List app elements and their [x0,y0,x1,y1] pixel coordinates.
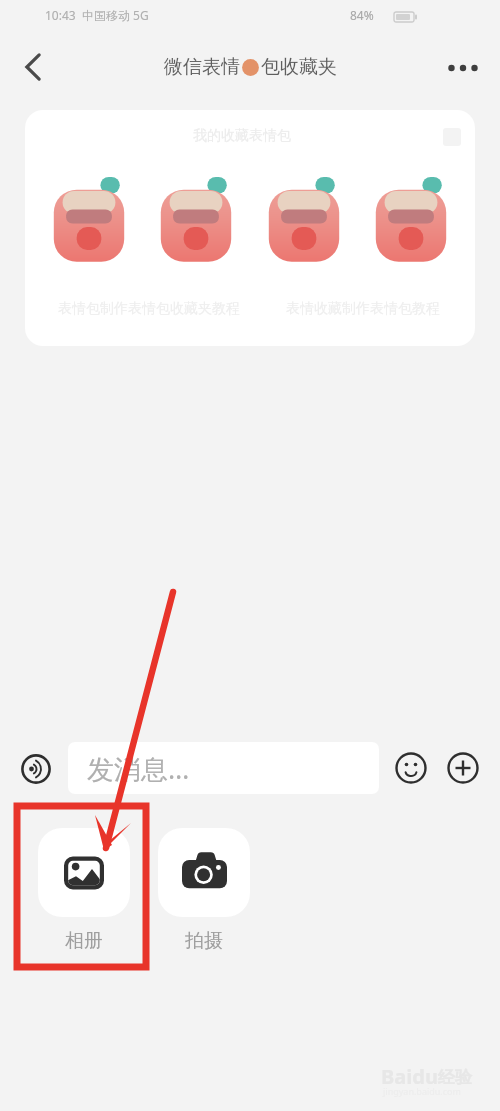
button[interactable]: 拍摄 [158,828,250,953]
staticText: 84% [350,7,374,23]
button[interactable]: More options [440,44,486,90]
button[interactable]: 相册 [38,828,130,953]
staticText: 表情包制作表情包收藏夹教程 [58,300,240,318]
button[interactable]: Back [10,44,56,90]
staticText: 发消息… [87,750,190,787]
staticText: 微信表情 [164,55,240,79]
staticText: Baidu [381,1063,438,1090]
button[interactable]: 发消息… [68,742,379,794]
staticText: 拍摄 [185,929,223,953]
staticText: 10:43 中国移动 5G [45,7,149,23]
staticText: 表情收藏制作表情包教程 [286,300,440,318]
button[interactable]: Add attachment [446,751,480,785]
staticText: 包收藏夹 [261,55,337,79]
staticText: 相册 [65,929,103,953]
button[interactable]: Voice message [18,751,54,787]
button[interactable]: Emoji [394,751,428,785]
staticText: 经验 [438,1067,472,1088]
staticText: 我的收藏表情包 [193,127,291,145]
button[interactable]: 我的收藏表情包 [25,110,475,346]
